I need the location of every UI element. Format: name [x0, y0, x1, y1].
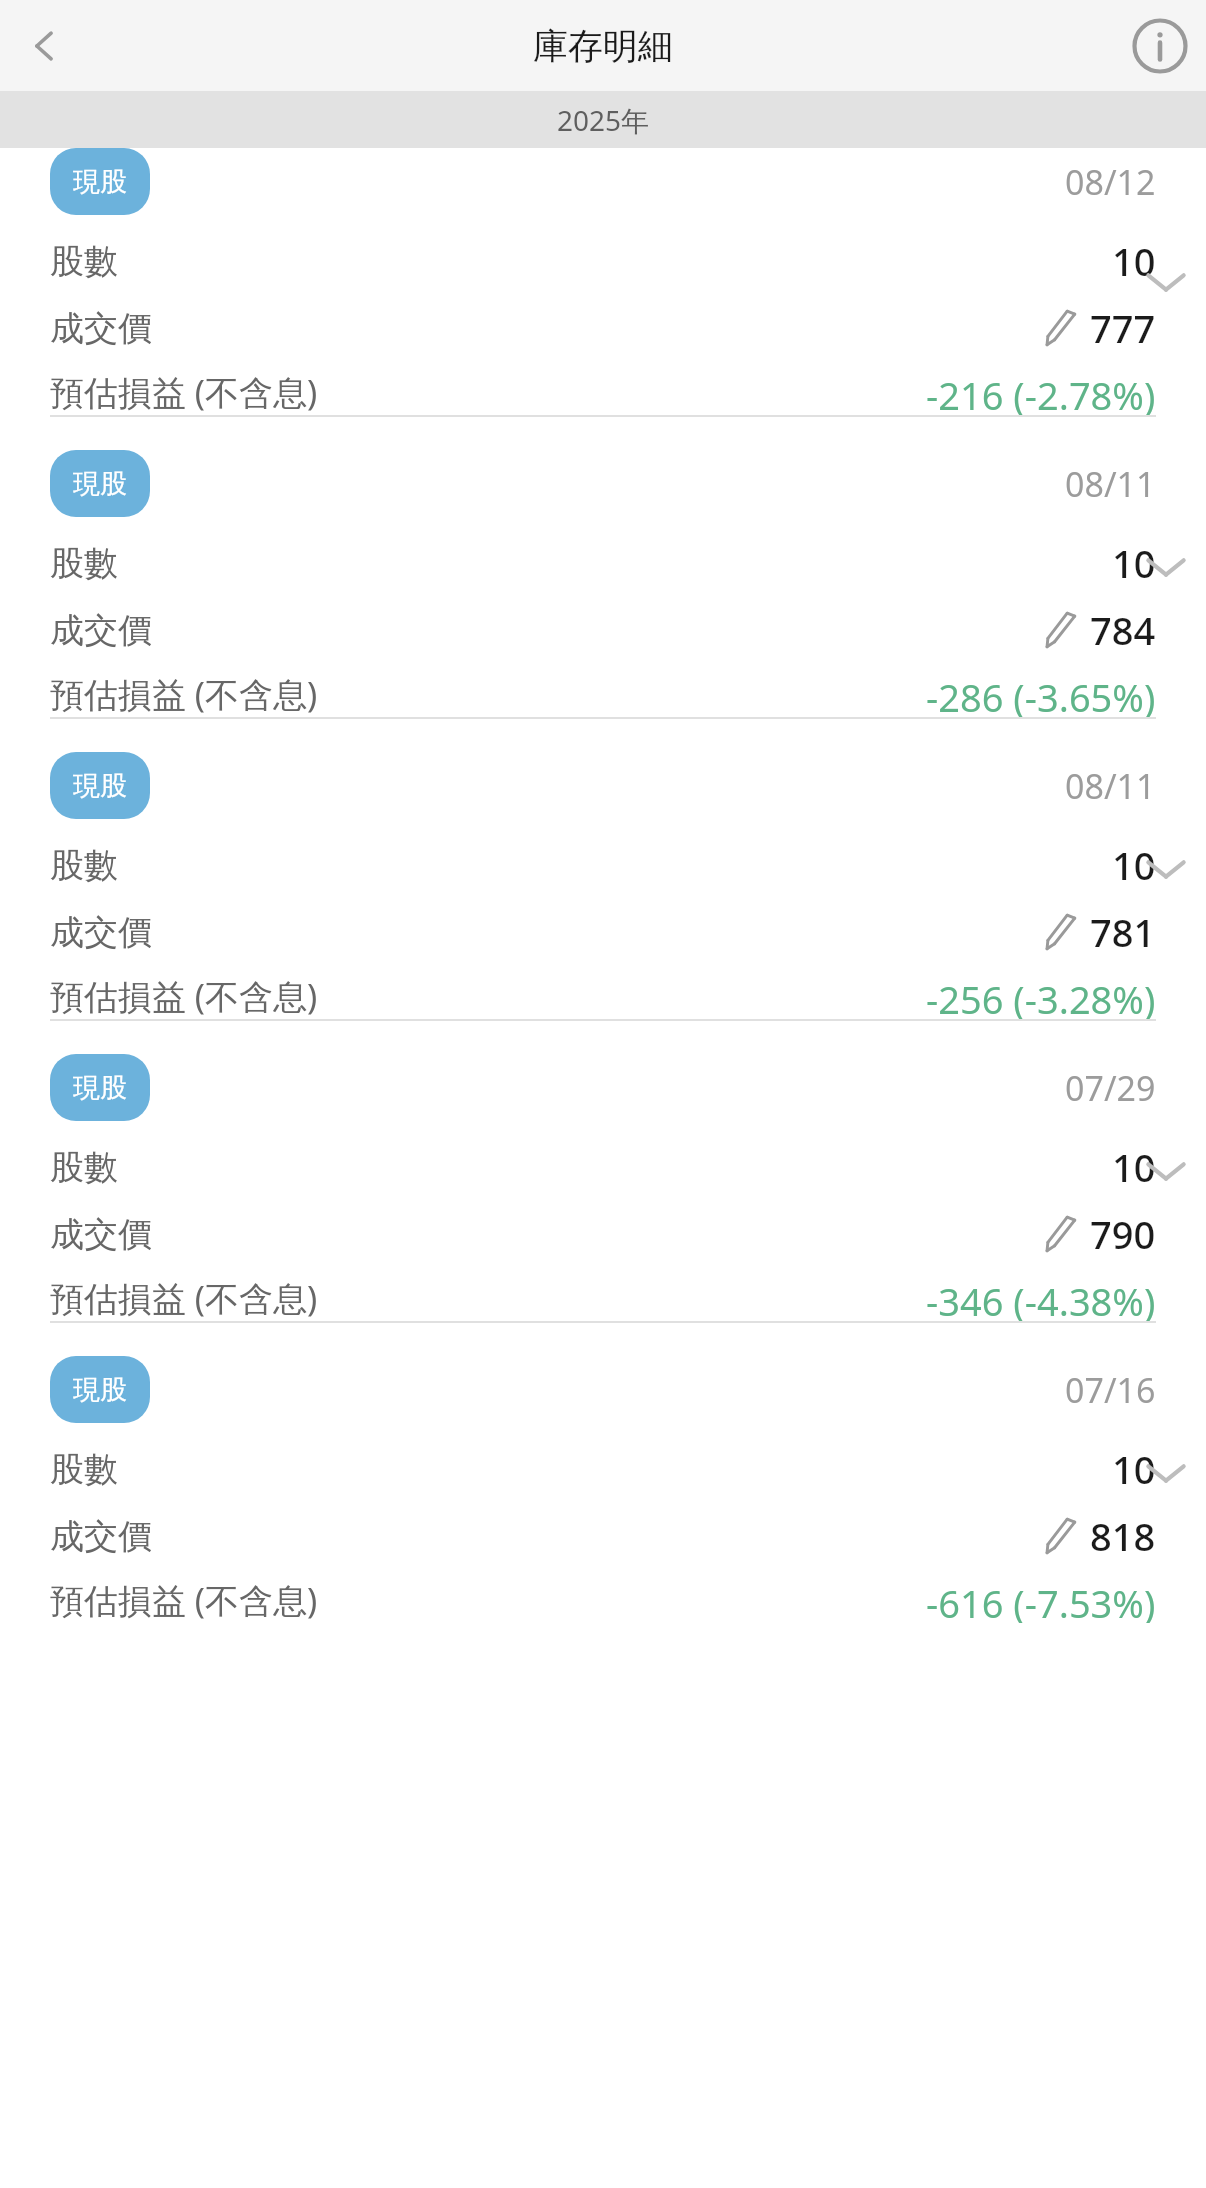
staticText: 股數 — [50, 542, 118, 585]
button[interactable]: Expand — [1126, 1433, 1206, 1513]
staticText: 股數 — [50, 1146, 118, 1189]
button[interactable]: Expand — [1126, 1131, 1206, 1211]
button[interactable]: 現股 — [0, 1323, 1206, 1623]
staticText: 781 — [1090, 906, 1156, 958]
staticText: 10 — [1112, 839, 1156, 891]
button[interactable]: Expand — [1126, 242, 1206, 322]
button[interactable]: 現股 — [0, 417, 1206, 717]
staticText: 現股 — [73, 467, 127, 501]
staticText: 成交價 — [50, 609, 152, 652]
staticText: 10 — [1112, 235, 1156, 287]
staticText: 成交價 — [50, 1515, 152, 1558]
staticText: -256 (-3.28%) — [926, 973, 1156, 1019]
staticText: 818 — [1090, 1510, 1156, 1562]
staticText: 庫存明細 — [533, 24, 673, 68]
button[interactable]: 現股 — [0, 1021, 1206, 1321]
staticText: 成交價 — [50, 1213, 152, 1256]
staticText: 08/11 — [1065, 461, 1156, 507]
staticText: 股數 — [50, 1448, 118, 1491]
staticText: 2025年 — [557, 101, 650, 139]
staticText: 成交價 — [50, 307, 152, 350]
staticText: 08/11 — [1065, 763, 1156, 809]
staticText: 現股 — [73, 1373, 127, 1407]
button[interactable]: Info — [1114, 0, 1206, 91]
staticText: 10 — [1112, 537, 1156, 589]
staticText: 777 — [1090, 302, 1156, 354]
button[interactable]: 現股 — [0, 148, 1206, 415]
staticText: 07/16 — [1065, 1367, 1156, 1413]
button[interactable]: Expand — [1126, 829, 1206, 909]
staticText: 預估損益 (不含息) — [50, 671, 318, 717]
staticText: 08/12 — [1065, 159, 1156, 205]
staticText: 現股 — [73, 165, 127, 199]
staticText: 預估損益 (不含息) — [50, 369, 318, 415]
staticText: 成交價 — [50, 911, 152, 954]
staticText: 股數 — [50, 240, 118, 283]
staticText: 預估損益 (不含息) — [50, 973, 318, 1019]
staticText: -346 (-4.38%) — [926, 1275, 1156, 1321]
button[interactable]: 現股 — [0, 719, 1206, 1019]
button[interactable]: Back — [0, 0, 90, 91]
staticText: 股數 — [50, 844, 118, 887]
staticText: 預估損益 (不含息) — [50, 1577, 318, 1623]
staticText: 預估損益 (不含息) — [50, 1275, 318, 1321]
staticText: -216 (-2.78%) — [926, 369, 1156, 415]
staticText: 790 — [1090, 1208, 1156, 1260]
staticText: 10 — [1112, 1141, 1156, 1193]
button[interactable]: Expand — [1126, 527, 1206, 607]
staticText: -286 (-3.65%) — [926, 671, 1156, 717]
staticText: 10 — [1112, 1443, 1156, 1495]
staticText: 784 — [1090, 604, 1156, 656]
staticText: -616 (-7.53%) — [926, 1577, 1156, 1623]
staticText: 07/29 — [1065, 1065, 1156, 1111]
staticText: 現股 — [73, 1071, 127, 1105]
staticText: 現股 — [73, 769, 127, 803]
